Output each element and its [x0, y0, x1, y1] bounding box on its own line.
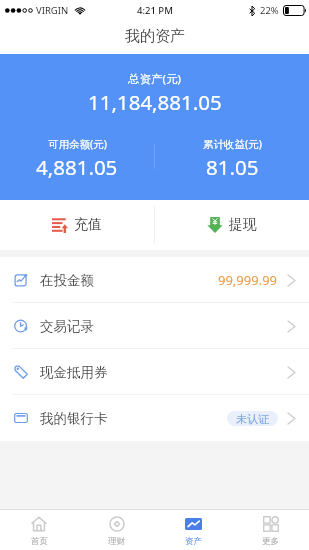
- button[interactable]: 交易记录: [0, 303, 309, 349]
- staticText: 81.05: [206, 153, 259, 181]
- button[interactable]: 在投金额: [0, 257, 309, 303]
- staticText: 充值: [74, 216, 102, 234]
- staticText: 现金抵用券: [40, 364, 108, 381]
- staticText: 在投金额: [40, 272, 94, 289]
- staticText: 资产: [185, 536, 202, 547]
- staticText: 交易记录: [40, 318, 94, 335]
- staticText: VIRGIN: [36, 4, 69, 17]
- staticText: 我的银行卡: [40, 410, 108, 427]
- staticText: 4:21 PM: [137, 4, 173, 17]
- button[interactable]: 更多: [232, 510, 309, 550]
- staticText: 4,881.05: [36, 153, 118, 181]
- staticText: 更多: [262, 536, 279, 547]
- staticText: 累计收益(元): [203, 137, 262, 151]
- staticText: 总资产(元): [128, 71, 181, 87]
- button[interactable]: 我的银行卡: [0, 395, 309, 441]
- staticText: 理财: [108, 536, 125, 547]
- button[interactable]: 提现: [155, 200, 309, 250]
- staticText: 我的资产: [125, 27, 185, 46]
- staticText: 11,184,881.05: [88, 88, 222, 116]
- button[interactable]: 理财: [78, 510, 155, 550]
- staticText: 提现: [229, 216, 257, 234]
- staticText: 可用余额(元): [48, 137, 107, 151]
- button[interactable]: 首页: [0, 510, 78, 550]
- staticText: 未认证: [236, 412, 269, 426]
- staticText: 22%: [260, 4, 279, 17]
- button[interactable]: 资产: [155, 510, 232, 550]
- button[interactable]: 充值: [0, 200, 154, 250]
- staticText: 首页: [31, 536, 48, 547]
- staticText: 99,999.99: [218, 271, 278, 289]
- button[interactable]: 现金抵用券: [0, 349, 309, 395]
